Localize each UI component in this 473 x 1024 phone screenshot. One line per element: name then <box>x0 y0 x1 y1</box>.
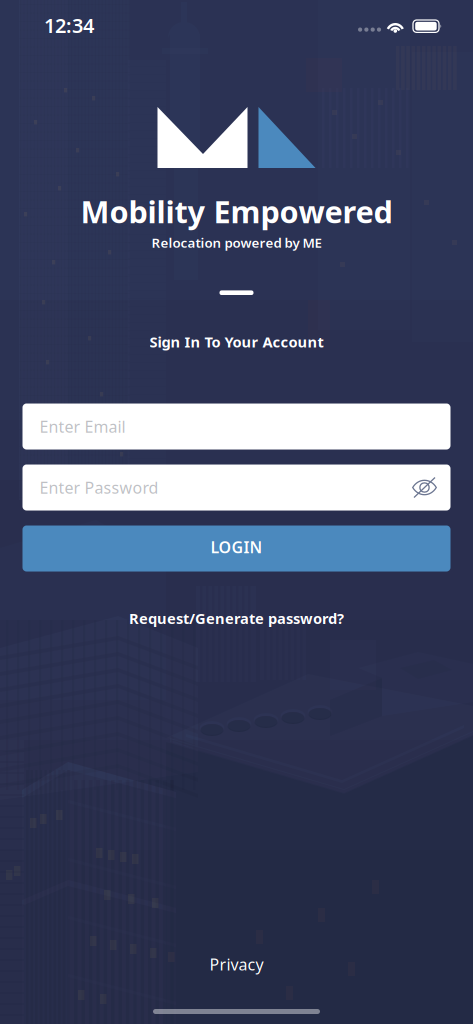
staticText: Privacy <box>209 954 263 975</box>
button[interactable]: Request/Generate password? <box>129 608 344 628</box>
button[interactable]: LOGIN <box>22 525 450 571</box>
staticText: 12:34 <box>44 12 94 39</box>
button[interactable]: Show password <box>402 465 446 509</box>
staticText: Request/Generate password? <box>129 608 344 628</box>
staticText: Mobility Empowered <box>80 191 392 232</box>
button[interactable]: Enter Password <box>22 464 450 510</box>
staticText: Relocation powered by ME <box>151 234 321 251</box>
staticText: Enter Password <box>39 477 158 498</box>
staticText: Enter Email <box>39 416 125 437</box>
button[interactable]: Privacy <box>209 954 263 975</box>
button[interactable]: Enter Email <box>22 403 450 449</box>
staticText: Sign In To Your Account <box>149 332 323 351</box>
staticText: LOGIN <box>210 536 262 558</box>
